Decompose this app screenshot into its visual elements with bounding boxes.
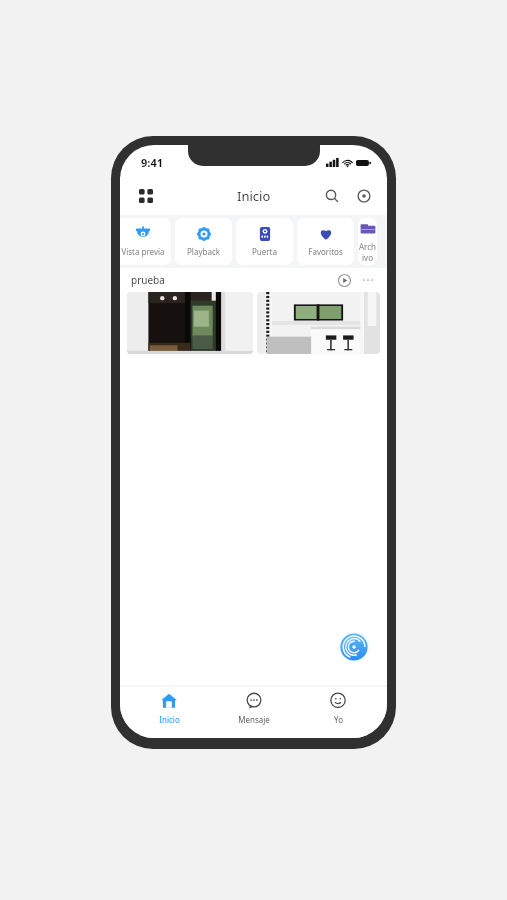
staticText: Inicio <box>159 714 180 725</box>
button[interactable]: Playback <box>175 218 232 265</box>
staticText: Puerta <box>252 246 277 257</box>
staticText: Inicio <box>237 187 271 205</box>
staticText: 9:41 <box>141 155 163 170</box>
staticText: Vista previa <box>121 246 165 257</box>
staticText: Yo <box>334 714 343 725</box>
button[interactable]: Buscar <box>319 183 345 209</box>
button[interactable] <box>257 292 380 354</box>
button[interactable]: Yo <box>302 692 374 738</box>
staticText: Archivo <box>358 241 377 263</box>
staticText: Favoritos <box>308 246 343 257</box>
button[interactable]: Inicio <box>133 692 205 738</box>
button[interactable]: Archivo <box>358 218 377 265</box>
button[interactable]: Reproducir grupo <box>334 270 354 290</box>
staticText: Playback <box>187 246 220 257</box>
button[interactable]: Mensaje <box>218 692 290 738</box>
button[interactable]: Asistente <box>337 630 371 664</box>
staticText: prueba <box>131 273 165 287</box>
button[interactable]: Puerta <box>236 218 293 265</box>
button[interactable]: Menu <box>133 183 159 209</box>
button[interactable]: Agregar dispositivo <box>351 183 377 209</box>
button[interactable]: Más opciones <box>358 270 378 290</box>
staticText: Mensaje <box>238 714 270 725</box>
button[interactable]: Favoritos <box>297 218 354 265</box>
button[interactable] <box>127 292 253 354</box>
button[interactable]: Vista previa <box>120 218 171 265</box>
